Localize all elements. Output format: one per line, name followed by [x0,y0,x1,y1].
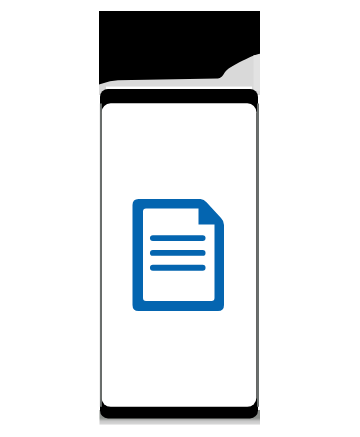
button[interactable]: Open document preview [99,88,261,426]
